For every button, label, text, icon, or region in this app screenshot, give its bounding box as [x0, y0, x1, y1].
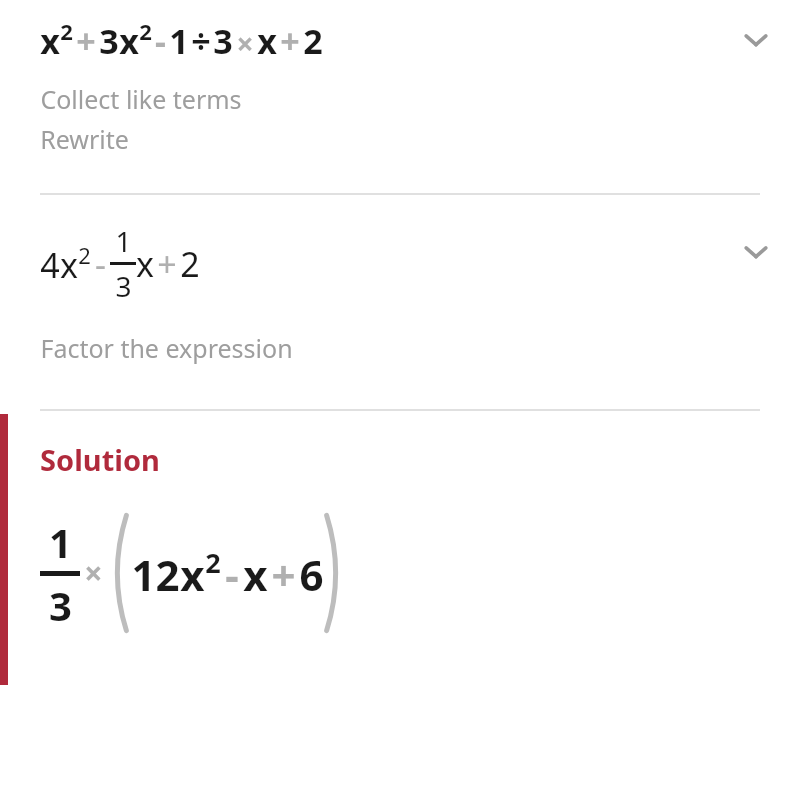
button[interactable]: Solution: [0, 440, 800, 633]
staticText: +: [157, 241, 177, 287]
staticText: x: [60, 242, 78, 288]
button[interactable]: Expand steps: [732, 16, 780, 64]
staticText: x: [257, 18, 277, 64]
staticText: Solution: [40, 440, 160, 479]
staticText: +: [271, 546, 296, 603]
staticText: 2: [303, 18, 323, 64]
staticText: 1: [49, 515, 72, 569]
staticText: +: [76, 18, 96, 64]
staticText: 4: [40, 242, 60, 288]
staticText: 3: [49, 578, 72, 632]
staticText: Factor the expression: [40, 331, 293, 365]
staticText: Rewrite: [40, 122, 129, 156]
staticText: ×: [236, 23, 254, 64]
staticText: x: [180, 546, 205, 603]
staticText: 3: [115, 267, 132, 305]
staticText: 6: [299, 546, 324, 603]
button[interactable]: x: [0, 16, 800, 156]
staticText: 2: [205, 544, 221, 581]
staticText: 12: [131, 546, 180, 603]
staticText: x: [243, 546, 268, 603]
staticText: x: [40, 18, 60, 64]
staticText: -: [95, 241, 106, 287]
staticText: 2: [180, 241, 200, 287]
staticText: ×: [84, 551, 103, 595]
staticText: x: [119, 18, 139, 64]
staticText: 3: [213, 18, 233, 64]
staticText: 1: [169, 18, 189, 64]
staticText: +: [280, 18, 300, 64]
staticText: 2: [60, 16, 73, 46]
staticText: 1: [115, 222, 132, 260]
staticText: 3: [99, 18, 119, 64]
staticText: -: [225, 546, 239, 603]
staticText: 2: [139, 16, 152, 46]
staticText: Collect like terms: [40, 82, 242, 116]
staticText: ÷: [191, 18, 211, 64]
button[interactable]: Expand steps: [732, 228, 780, 276]
staticText: 2: [78, 240, 91, 270]
button[interactable]: 4: [0, 222, 800, 365]
staticText: x: [136, 241, 154, 287]
staticText: -: [155, 18, 166, 64]
